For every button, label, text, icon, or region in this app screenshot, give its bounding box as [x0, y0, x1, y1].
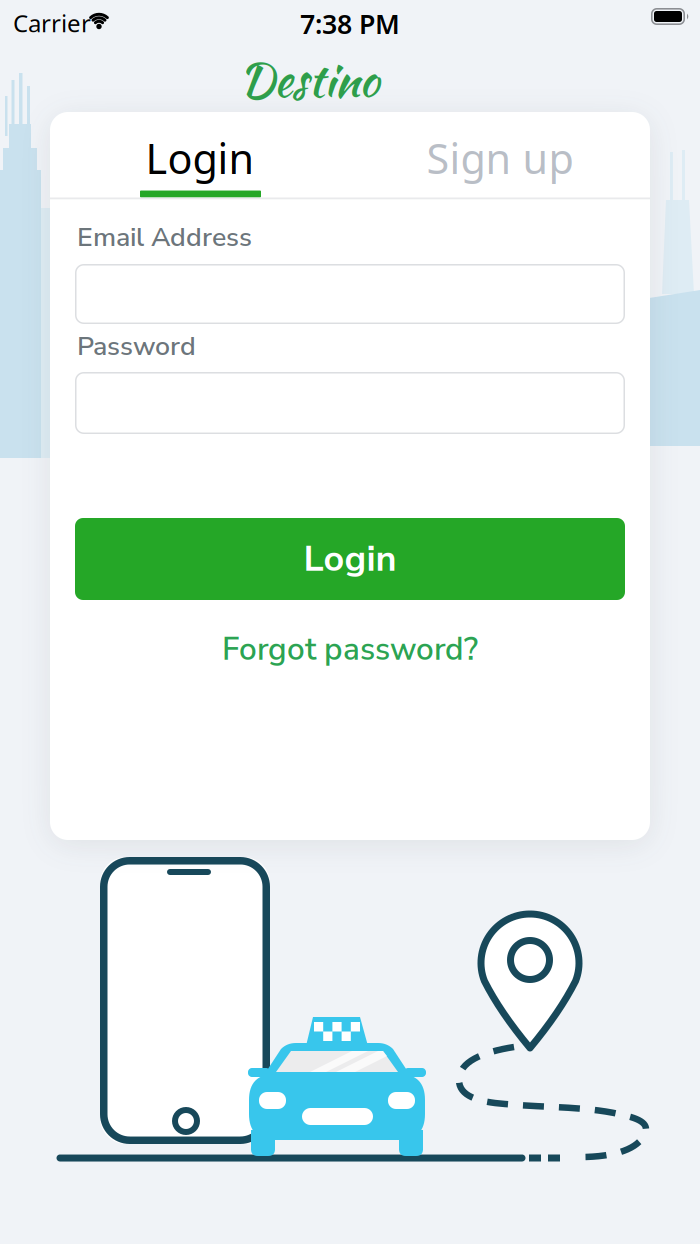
staticText: Destino	[239, 47, 379, 113]
staticText: Login	[303, 534, 396, 583]
button[interactable]: Password	[75, 372, 625, 434]
button[interactable]: Sign up	[350, 116, 650, 200]
button[interactable]: Forgot password?	[50, 628, 650, 671]
staticText: Email Address	[77, 219, 252, 255]
staticText: Password	[77, 328, 196, 364]
staticText: Login	[145, 131, 254, 185]
staticText: Carrier	[13, 7, 91, 39]
staticText: Sign up	[426, 131, 573, 185]
button[interactable]: Email Address	[75, 264, 625, 324]
button[interactable]: Login	[50, 116, 350, 200]
staticText: Forgot password?	[222, 628, 478, 671]
button[interactable]: Login	[75, 518, 625, 600]
staticText: 7:38 PM	[300, 6, 400, 41]
